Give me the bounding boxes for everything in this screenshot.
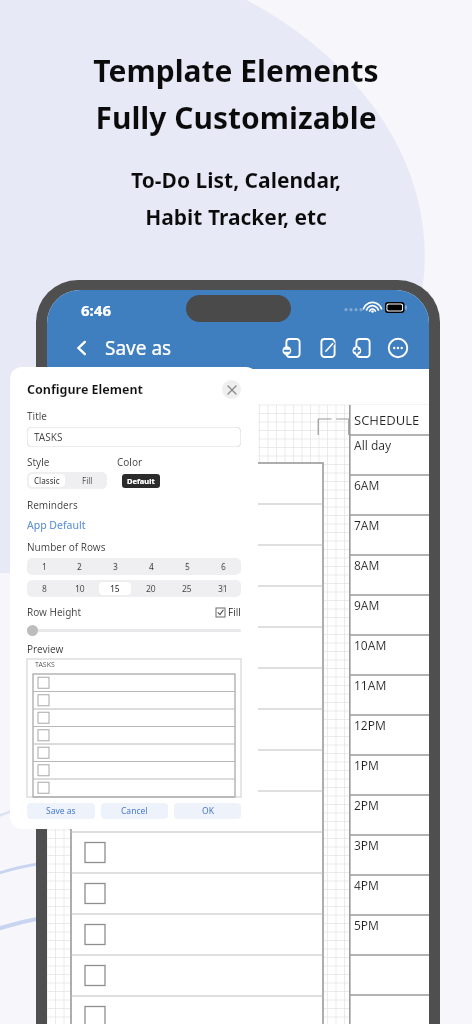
- staticText: 6:46: [81, 300, 111, 320]
- staticText: 6: [221, 561, 226, 573]
- button[interactable]: 25: [169, 580, 205, 597]
- staticText: 4: [149, 561, 154, 573]
- staticText: 20: [146, 583, 156, 595]
- staticText: Color: [117, 455, 143, 469]
- staticText: Fill: [228, 605, 241, 619]
- staticText: To-Do List, Calendar,: [131, 166, 341, 195]
- staticText: 8AM: [354, 557, 380, 573]
- staticText: 1PM: [354, 757, 380, 773]
- button[interactable]: 20: [133, 580, 169, 597]
- staticText: Row Height: [27, 605, 82, 619]
- staticText: 11AM: [354, 677, 387, 693]
- button[interactable]: TASKS: [27, 427, 241, 447]
- staticText: Save as: [46, 805, 76, 817]
- button[interactable]: Default: [127, 476, 155, 486]
- button[interactable]: Add page: [348, 333, 378, 363]
- button[interactable]: [27, 625, 38, 636]
- staticText: 3PM: [354, 837, 380, 853]
- staticText: Title: [27, 409, 47, 423]
- staticText: 10AM: [354, 637, 387, 653]
- staticText: Default: [127, 476, 155, 486]
- staticText: Reminders: [27, 498, 78, 512]
- staticText: App Default: [27, 518, 86, 532]
- staticText: 4PM: [354, 877, 380, 893]
- staticText: Configure Element: [27, 381, 143, 398]
- button[interactable]: Fill: [67, 472, 107, 489]
- button[interactable]: Cancel: [101, 803, 168, 819]
- button[interactable]: Back: [67, 333, 97, 363]
- button[interactable]: Remove page: [278, 333, 308, 363]
- staticText: 31: [218, 583, 228, 595]
- button[interactable]: 6: [205, 558, 241, 575]
- staticText: Planner: [71, 377, 141, 403]
- staticText: 5: [185, 561, 190, 573]
- staticText: 12PM: [354, 717, 386, 733]
- button[interactable]: 31: [205, 580, 241, 597]
- button[interactable]: 5: [169, 558, 205, 575]
- button[interactable]: More options: [383, 333, 413, 363]
- button[interactable]: 1: [27, 558, 62, 575]
- staticText: 8: [42, 583, 47, 595]
- button[interactable]: Save as: [27, 803, 95, 819]
- button[interactable]: 2: [62, 558, 97, 575]
- button[interactable]: Save as: [105, 335, 172, 361]
- staticText: Fully Customizable: [95, 97, 377, 138]
- staticText: 6AM: [354, 477, 380, 493]
- staticText: Habit Tracker, etc: [145, 203, 327, 232]
- staticText: Cancel: [121, 805, 148, 817]
- staticText: Style: [27, 455, 50, 469]
- staticText: OK: [202, 805, 214, 817]
- staticText: 15: [110, 583, 120, 595]
- staticText: Save as: [105, 335, 172, 361]
- button[interactable]: 15: [99, 582, 131, 595]
- staticText: TASKS: [34, 430, 63, 444]
- staticText: 9AM: [354, 597, 380, 613]
- staticText: 25: [182, 583, 192, 595]
- button[interactable]: 8: [27, 580, 62, 597]
- staticText: SCHEDULE: [354, 411, 420, 429]
- staticText: Template Elements: [93, 50, 379, 91]
- staticText: TASKS: [35, 660, 55, 670]
- staticText: 2: [77, 561, 82, 573]
- staticText: Fill: [82, 475, 93, 486]
- button[interactable]: 3: [97, 558, 133, 575]
- staticText: 1: [42, 561, 47, 573]
- staticText: All day: [354, 437, 392, 453]
- button[interactable]: Close: [222, 380, 241, 399]
- staticText: 5PM: [354, 917, 380, 933]
- button[interactable]: 10: [62, 580, 97, 597]
- button[interactable]: 4: [133, 558, 169, 575]
- staticText: 3: [113, 561, 118, 573]
- button[interactable]: Edit page: [313, 333, 343, 363]
- button[interactable]: Classic: [29, 474, 65, 487]
- button[interactable]: App Default: [27, 518, 86, 532]
- staticText: 7AM: [354, 517, 380, 533]
- staticText: Preview: [27, 642, 64, 656]
- staticText: 10: [75, 583, 85, 595]
- staticText: 2PM: [354, 797, 380, 813]
- button[interactable]: OK: [174, 803, 241, 819]
- staticText: Classic: [34, 475, 60, 486]
- staticText: Number of Rows: [27, 540, 106, 554]
- button[interactable]: Fill: [216, 605, 241, 619]
